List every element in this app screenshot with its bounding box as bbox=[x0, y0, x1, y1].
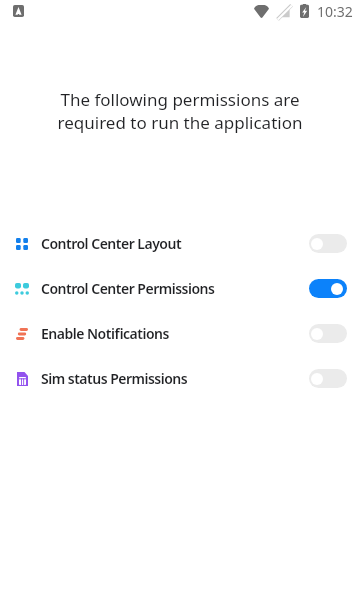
staticText: Control Center Layout bbox=[41, 234, 182, 253]
staticText: 10:32 bbox=[317, 2, 353, 21]
staticText: The following permissions are required t… bbox=[0, 88, 360, 134]
staticText: Sim status Permissions bbox=[41, 369, 188, 388]
staticText: Control Center Permissions bbox=[41, 279, 215, 298]
button[interactable]: Toggle bbox=[309, 369, 347, 388]
button[interactable]: Toggle bbox=[309, 324, 347, 343]
button[interactable]: Sim status Permissions bbox=[0, 356, 360, 401]
button[interactable]: Control Center Permissions bbox=[0, 266, 360, 311]
button[interactable]: Toggle bbox=[309, 279, 347, 298]
button[interactable]: Toggle bbox=[309, 234, 347, 253]
staticText: Enable Notifications bbox=[41, 324, 169, 343]
button[interactable]: Control Center Layout bbox=[0, 221, 360, 266]
button[interactable]: Enable Notifications bbox=[0, 311, 360, 356]
